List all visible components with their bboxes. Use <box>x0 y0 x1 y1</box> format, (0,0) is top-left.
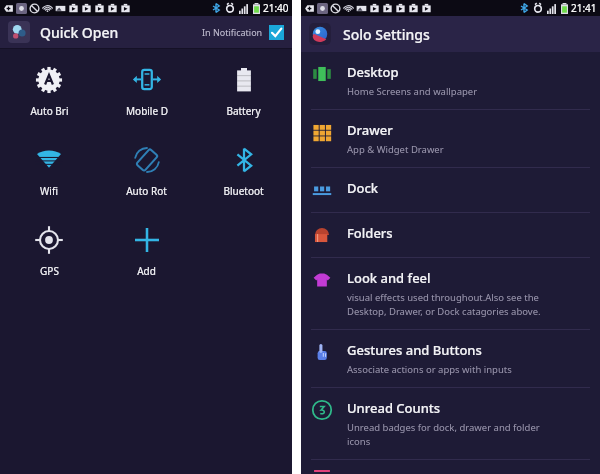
staticText: Add <box>137 264 156 278</box>
staticText: Auto Bri <box>30 104 69 118</box>
button[interactable]: GPS <box>0 221 98 309</box>
staticText: Dock <box>347 179 379 197</box>
staticText: Mobile D <box>126 104 168 118</box>
staticText: Gestures and Buttons <box>347 341 482 359</box>
staticText: Bluetoot <box>223 184 264 198</box>
button[interactable]: Backup and import <box>301 460 600 474</box>
staticText: Associate actions or apps with inputs <box>347 363 512 376</box>
button[interactable]: Add <box>98 221 195 309</box>
staticText: Unread badges for dock, drawer and folde… <box>347 421 540 434</box>
staticText: In Notification <box>202 26 263 38</box>
staticText: GPS <box>40 264 59 278</box>
staticText: Drawer <box>347 121 393 139</box>
staticText: icons <box>347 435 371 448</box>
button[interactable]: Desktop <box>301 52 600 110</box>
staticText: Home Screens and wallpaper <box>347 85 478 98</box>
staticText: Desktop <box>347 63 399 81</box>
button[interactable]: Drawer <box>301 110 600 168</box>
button[interactable]: Battery <box>195 61 292 141</box>
button[interactable]: Mobile D <box>98 61 195 141</box>
button[interactable]: In Notification toggle <box>269 25 284 40</box>
button[interactable]: Gestures and Buttons <box>301 330 600 388</box>
button[interactable]: Bluetoot <box>195 141 292 221</box>
staticText: 21:41 <box>571 1 597 15</box>
button[interactable]: Quick Open <box>0 16 292 48</box>
staticText: Wifi <box>40 184 58 198</box>
button[interactable]: Folders <box>301 213 600 258</box>
staticText: App & Widget Drawer <box>347 143 444 156</box>
staticText: visual effects used throughout.Also see … <box>347 291 539 304</box>
button[interactable]: Unread Counts <box>301 388 600 460</box>
staticText: Unread Counts <box>347 399 441 417</box>
staticText: 21:40 <box>263 1 289 15</box>
staticText: Folders <box>347 224 393 242</box>
button[interactable]: Wifi <box>0 141 98 221</box>
button[interactable]: Solo Settings <box>301 16 600 52</box>
button[interactable]: Dock <box>301 168 600 213</box>
staticText: Auto Rot <box>126 184 167 198</box>
staticText: Solo Settings <box>343 25 430 44</box>
staticText: Desktop, Drawer, or Dock catagories abov… <box>347 305 541 318</box>
button[interactable]: Look and feel <box>301 258 600 330</box>
button[interactable]: Auto Bri <box>0 61 98 141</box>
staticText: Look and feel <box>347 269 431 287</box>
staticText: Quick Open <box>40 23 119 42</box>
button[interactable]: Auto Rot <box>98 141 195 221</box>
staticText: Battery <box>226 104 261 118</box>
